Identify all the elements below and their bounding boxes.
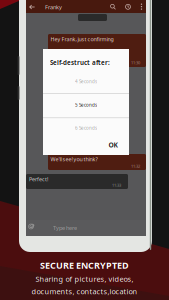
button[interactable]: Back [26,0,39,13]
staticText: documents, contacts,location [31,286,137,296]
staticText: SECURE ENCRYPTED [40,259,129,271]
staticText: 11:32 [131,163,140,169]
staticText: Type here [53,224,77,232]
staticText: Perfect! [29,175,48,183]
staticText: Hey Frank, just confirming [50,35,113,43]
button[interactable]: Search [26,0,121,13]
staticText: 11:30 [131,60,140,65]
button[interactable]: OK [103,139,123,151]
staticText: 5 Seconds [75,102,97,108]
staticText: 4 Seconds [75,78,97,85]
staticText: Sharing of pictures, videos, [35,274,133,284]
staticText: 11:33 [112,182,121,188]
button[interactable]: Disappearing messages [26,0,136,13]
staticText: OK [108,140,117,150]
staticText: We'll see! you think? [50,155,97,163]
button[interactable]: More options [26,0,146,13]
button[interactable]: Emoji [26,220,37,236]
staticText: Self-destruct after: [50,58,110,67]
button[interactable]: Type here [26,220,146,236]
button[interactable]: Attach file [26,220,49,236]
staticText: Franky [45,3,62,11]
staticText: 6 Seconds [75,125,97,131]
